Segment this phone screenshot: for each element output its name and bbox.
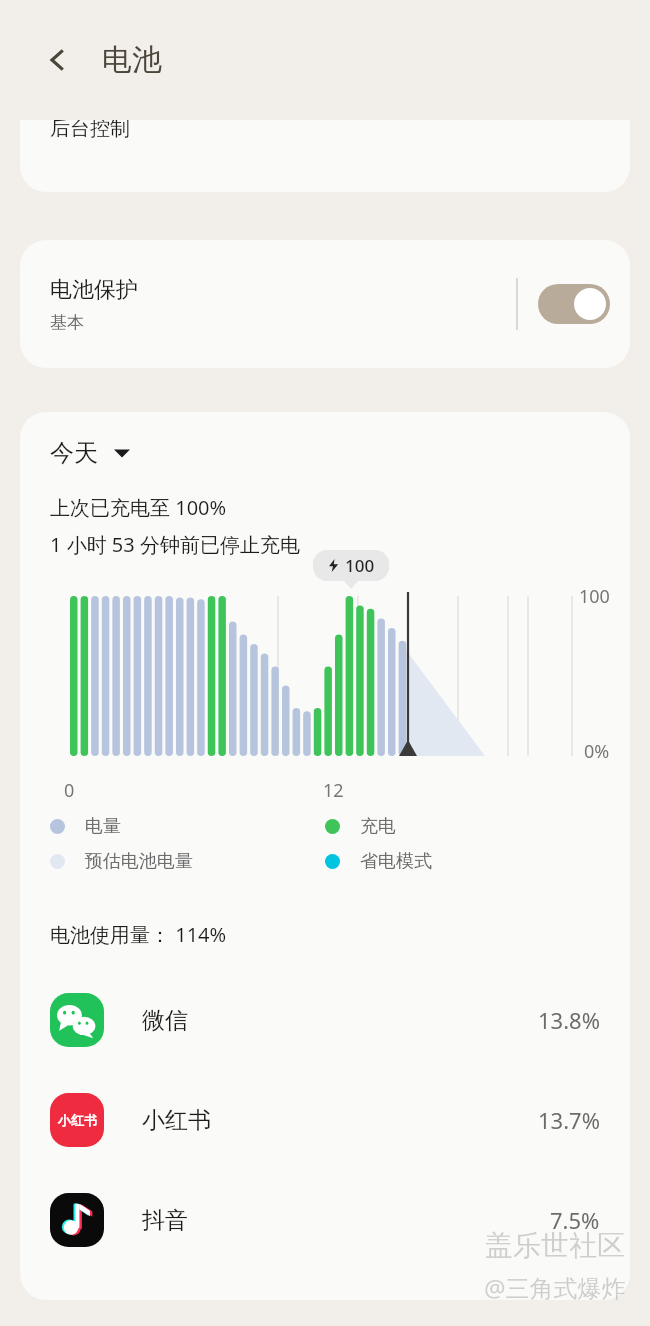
staticText: 0% bbox=[584, 739, 610, 764]
staticText: 0 bbox=[64, 778, 75, 803]
staticText: 充电 bbox=[360, 815, 396, 838]
button[interactable]: 抖音 bbox=[20, 1170, 630, 1270]
staticText: 1 小时 53 分钟前已停止充电 bbox=[50, 531, 300, 558]
button[interactable]: Battery protection toggle bbox=[538, 284, 610, 324]
staticText: 小红书 bbox=[142, 1106, 211, 1135]
button[interactable]: 今天 bbox=[50, 438, 130, 468]
button[interactable]: 电池保护 bbox=[20, 240, 630, 368]
staticText: 100 bbox=[345, 554, 375, 577]
staticText: 微信 bbox=[142, 1006, 188, 1035]
staticText: 电池使用量： 114% bbox=[50, 921, 227, 948]
staticText: 抖音 bbox=[142, 1206, 188, 1235]
staticText: 13.7% bbox=[538, 1105, 600, 1135]
staticText: 7.5% bbox=[550, 1205, 600, 1235]
button[interactable]: 后台控制 bbox=[20, 120, 630, 192]
staticText: @三角式爆炸 bbox=[484, 1271, 626, 1304]
button[interactable]: 微信 bbox=[20, 970, 630, 1070]
staticText: 盖乐世社区 bbox=[485, 1228, 625, 1263]
staticText: 100 bbox=[579, 584, 610, 609]
staticText: 上次已充电至 100% bbox=[50, 494, 227, 521]
staticText: 省电模式 bbox=[360, 850, 432, 873]
staticText: 电池 bbox=[102, 41, 162, 79]
staticText: 预估电池电量 bbox=[85, 850, 193, 873]
button[interactable]: 小红书 bbox=[20, 1070, 630, 1170]
staticText: 电池保护 bbox=[50, 276, 138, 304]
staticText: 13.8% bbox=[538, 1005, 600, 1035]
staticText: 后台控制 bbox=[50, 120, 130, 141]
staticText: 基本 bbox=[50, 312, 84, 333]
staticText: 今天 bbox=[50, 438, 98, 468]
button[interactable]: Back bbox=[36, 38, 80, 82]
staticText: 电量 bbox=[85, 815, 121, 838]
staticText: 小红书 bbox=[58, 1112, 97, 1128]
staticText: 12 bbox=[323, 778, 344, 803]
